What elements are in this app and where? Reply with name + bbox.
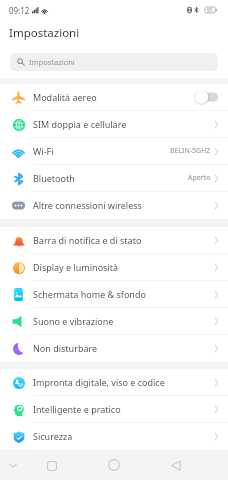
- button[interactable]: Display e luminosità: [0, 254, 228, 280]
- staticText: Barra di notifica e di stato: [33, 234, 142, 246]
- staticText: Display e luminosità: [33, 261, 119, 273]
- staticText: Impostazioni: [29, 57, 75, 67]
- button[interactable]: Bluetooth: [0, 165, 228, 191]
- button[interactable]: Hide keyboard: [1, 453, 25, 477]
- button[interactable]: Wi-Fi: [0, 138, 228, 164]
- staticText: Impostazioni: [9, 25, 80, 41]
- button[interactable]: SIM doppia e cellulare: [0, 111, 228, 137]
- button[interactable]: Home: [101, 452, 127, 478]
- staticText: Bluetooth: [33, 172, 75, 184]
- button[interactable]: Modalità aereo: [195, 89, 221, 105]
- staticText: Sicurezza: [33, 430, 73, 442]
- button[interactable]: Non disturbare: [0, 335, 228, 361]
- staticText: SIM doppia e cellulare: [33, 118, 127, 130]
- staticText: Suono e vibrazione: [33, 315, 114, 327]
- button[interactable]: Modalità aereo: [0, 84, 228, 110]
- button[interactable]: Recent apps: [39, 453, 64, 478]
- staticText: Aperto: [188, 173, 211, 183]
- staticText: Intelligente e pratico: [33, 403, 121, 415]
- staticText: Impronta digitale, viso e codice: [33, 376, 165, 388]
- staticText: 95: [207, 7, 213, 13]
- staticText: Non disturbare: [33, 342, 98, 354]
- staticText: Schermata home & sfondo: [33, 288, 146, 300]
- button[interactable]: Sicurezza: [0, 423, 228, 449]
- staticText: Altre connessioni wireless: [33, 199, 142, 211]
- staticText: Modalità aereo: [33, 91, 97, 103]
- button[interactable]: Suono e vibrazione: [0, 308, 228, 334]
- button[interactable]: Barra di notifica e di stato: [0, 227, 228, 253]
- button[interactable]: Impostazioni: [10, 53, 218, 71]
- button[interactable]: Intelligente e pratico: [0, 396, 228, 422]
- staticText: BELIN-5GHZ: [170, 146, 211, 156]
- staticText: Wi-Fi: [33, 145, 54, 157]
- button[interactable]: Impronta digitale, viso e codice: [0, 369, 228, 395]
- button[interactable]: Schermata home & sfondo: [0, 281, 228, 307]
- staticText: 09:12: [9, 5, 30, 16]
- button[interactable]: Altre connessioni wireless: [0, 192, 228, 218]
- button[interactable]: Back: [163, 453, 188, 478]
